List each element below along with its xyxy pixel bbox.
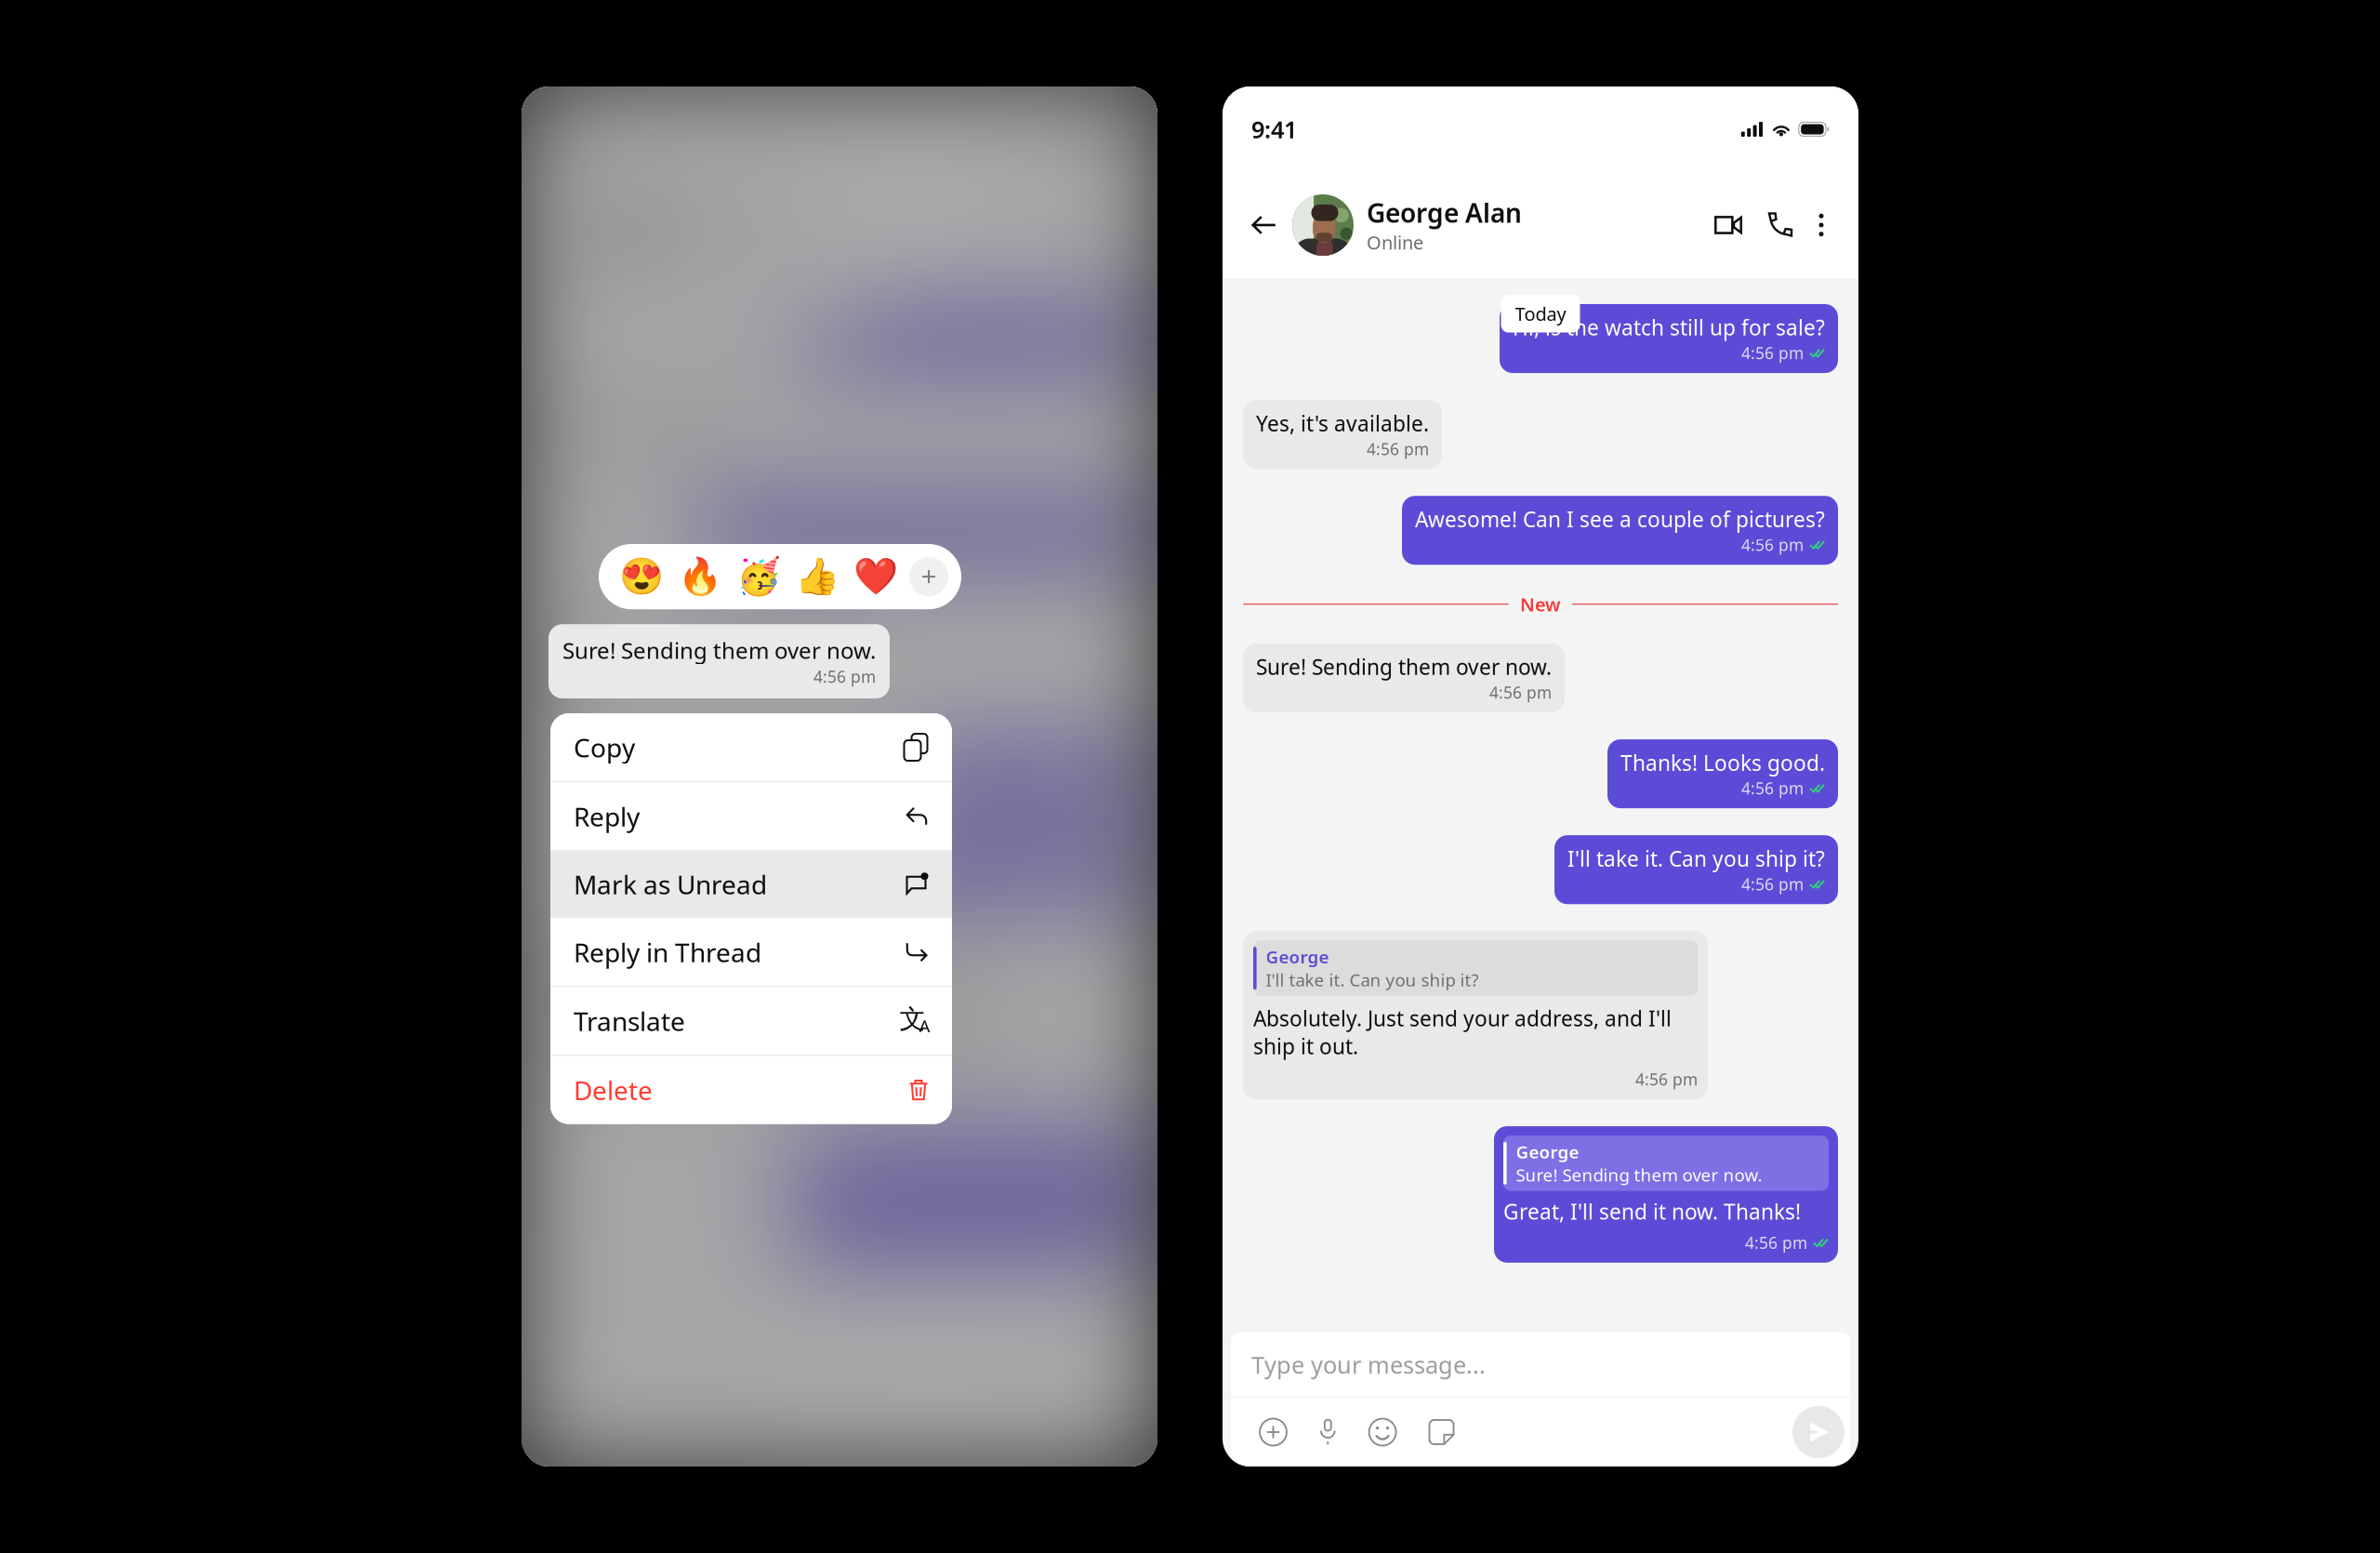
- staticText: 4:56 pm: [1040, 778, 1103, 799]
- staticText: Awesome! Can I see a couple of pictures?: [714, 505, 1124, 533]
- staticText: I'll take it. Can you ship it?: [1567, 845, 1825, 873]
- button[interactable]: More options: [1806, 208, 1836, 242]
- staticText: I'll take it. Can you ship it?: [565, 968, 778, 991]
- button[interactable]: Video call: [1705, 207, 1752, 244]
- staticText: I'll take it. Can you ship it?: [1266, 968, 1479, 991]
- button[interactable]: Back: [1245, 206, 1283, 244]
- staticText: ❤️: [853, 556, 898, 597]
- staticText: Type your message...: [550, 1349, 785, 1380]
- staticText: Sure! Sending them over now.: [1256, 653, 1552, 681]
- button[interactable]: Reply in Thread: [550, 918, 952, 986]
- staticText: Sure! Sending them over now.: [555, 653, 851, 681]
- staticText: George: [565, 945, 628, 968]
- staticText: Translate: [574, 1004, 685, 1038]
- staticText: Yes, it's available.: [555, 409, 728, 437]
- button[interactable]: Send: [1091, 1406, 1144, 1458]
- button[interactable]: Attach: [1251, 1410, 1295, 1454]
- button[interactable]: Mark as Unread: [550, 850, 952, 918]
- staticText: 4:56 pm: [1741, 873, 1804, 895]
- staticText: Sure! Sending them over now.: [562, 635, 876, 665]
- staticText: New: [1520, 592, 1561, 617]
- staticText: Thanks! Looks good.: [1620, 749, 1825, 777]
- staticText: George: [815, 1140, 878, 1163]
- staticText: Reply in Thread: [574, 935, 761, 969]
- staticText: 文: [899, 1003, 926, 1035]
- staticText: Delete: [574, 1073, 653, 1107]
- button[interactable]: Delete: [550, 1056, 952, 1124]
- staticText: Copy: [574, 730, 635, 765]
- staticText: New: [819, 592, 860, 617]
- button[interactable]: Emoji: [1361, 1410, 1404, 1454]
- staticText: 4:56 pm: [1040, 342, 1103, 364]
- staticText: Great, I'll send it now. Thanks!: [1503, 1197, 1801, 1225]
- staticText: 4:56 pm: [934, 1069, 997, 1090]
- button[interactable]: Send: [1792, 1406, 1844, 1458]
- staticText: Yes, it's available.: [1256, 409, 1429, 437]
- button[interactable]: React heart eyes: [619, 556, 664, 597]
- staticText: 4:56 pm: [1741, 342, 1804, 364]
- button[interactable]: George Alan: [1283, 189, 1522, 261]
- button[interactable]: React thumbs up: [795, 556, 840, 597]
- staticText: George Alan: [1367, 195, 1522, 230]
- staticText: Great, I'll send it now. Thanks!: [802, 1197, 1100, 1225]
- button[interactable]: Record voice: [1311, 1410, 1345, 1454]
- staticText: 4:56 pm: [1635, 1069, 1698, 1090]
- staticText: 9:41: [550, 114, 596, 145]
- staticText: 🔥: [678, 556, 722, 597]
- staticText: 4:56 pm: [1367, 438, 1429, 460]
- button[interactable]: Translate: [550, 987, 952, 1055]
- button[interactable]: Voice call: [1056, 202, 1102, 248]
- button[interactable]: Attach: [550, 1410, 594, 1454]
- staticText: Hi, is the watch still up for sale?: [1513, 313, 1825, 341]
- staticText: George: [1266, 945, 1329, 968]
- staticText: Sure! Sending them over now.: [1516, 1163, 1762, 1186]
- staticText: George: [1516, 1140, 1579, 1163]
- staticText: Absolutely. Just send your address, and …: [552, 1004, 971, 1060]
- button[interactable]: Sticker: [719, 1411, 762, 1453]
- staticText: I'll take it. Can you ship it?: [866, 845, 1124, 873]
- staticText: Today: [1515, 301, 1566, 326]
- staticText: Type your message...: [1251, 1349, 1486, 1380]
- staticText: Online: [1367, 230, 1423, 255]
- staticText: 4:56 pm: [813, 666, 876, 687]
- staticText: A: [919, 1014, 930, 1037]
- staticText: 4:56 pm: [1741, 534, 1804, 555]
- button[interactable]: Emoji: [660, 1410, 703, 1454]
- staticText: 👍: [795, 556, 840, 597]
- button[interactable]: More options: [1105, 208, 1135, 242]
- button[interactable]: More reactions: [909, 557, 948, 596]
- staticText: Mark as Unread: [574, 867, 767, 901]
- staticText: Today: [814, 301, 865, 326]
- staticText: 😍: [619, 556, 664, 597]
- staticText: 4:56 pm: [788, 682, 851, 703]
- staticText: Hi, is the watch still up for sale?: [812, 313, 1124, 341]
- staticText: Thanks! Looks good.: [919, 749, 1124, 777]
- button[interactable]: Back: [544, 206, 582, 244]
- staticText: Reply: [574, 799, 640, 834]
- staticText: 4:56 pm: [1745, 1232, 1807, 1253]
- button[interactable]: Copy: [550, 713, 952, 781]
- staticText: 4:56 pm: [1044, 1232, 1106, 1253]
- staticText: 4:56 pm: [1741, 778, 1804, 799]
- button[interactable]: React heart: [853, 556, 898, 597]
- staticText: 4:56 pm: [1040, 534, 1103, 555]
- staticText: 4:56 pm: [1040, 873, 1103, 895]
- staticText: 🥳: [736, 556, 781, 597]
- button[interactable]: Record voice: [610, 1410, 644, 1454]
- staticText: 4:56 pm: [1489, 682, 1552, 703]
- button[interactable]: Reply: [550, 782, 952, 850]
- button[interactable]: George Alan: [582, 189, 821, 261]
- staticText: Sure! Sending them over now.: [815, 1163, 1061, 1186]
- button[interactable]: React fire: [678, 556, 722, 597]
- staticText: Absolutely. Just send your address, and …: [1253, 1004, 1672, 1060]
- staticText: 9:41: [1251, 114, 1297, 145]
- staticText: Awesome! Can I see a couple of pictures?: [1415, 505, 1825, 533]
- button[interactable]: Sticker: [1420, 1411, 1463, 1453]
- button[interactable]: React party: [736, 556, 781, 597]
- button[interactable]: Voice call: [1757, 202, 1803, 248]
